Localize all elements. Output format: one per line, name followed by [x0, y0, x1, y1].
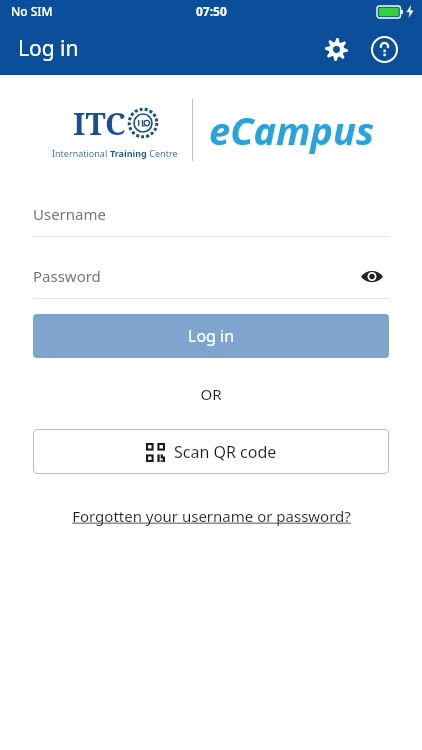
button[interactable]: Show password — [355, 259, 389, 293]
button[interactable]: Log in — [33, 314, 389, 358]
staticText: Scan QR code — [174, 441, 277, 463]
staticText: ITC — [73, 102, 126, 144]
button[interactable]: Password — [33, 253, 389, 298]
staticText: OR — [33, 384, 389, 404]
button[interactable]: Scan QR code — [33, 429, 389, 474]
button[interactable]: Username — [33, 191, 389, 236]
staticText: Log in — [18, 34, 79, 63]
staticText: Password — [33, 266, 101, 286]
staticText: Training — [110, 147, 147, 159]
staticText: Username — [33, 204, 106, 224]
staticText: eCampus — [209, 104, 374, 156]
button[interactable]: Help — [364, 29, 404, 69]
staticText: 07:50 — [196, 3, 227, 19]
staticText: Forgotten your username or password? — [72, 506, 351, 526]
staticText: International — [52, 147, 110, 159]
button[interactable]: Settings — [316, 29, 356, 69]
button[interactable]: Forgotten your username or password? — [33, 506, 389, 526]
staticText: Log in — [188, 325, 235, 347]
staticText: Centre — [147, 147, 178, 159]
staticText: No SIM — [11, 3, 53, 19]
